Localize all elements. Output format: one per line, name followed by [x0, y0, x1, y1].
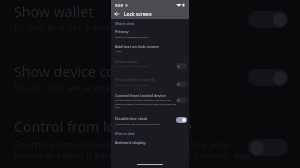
- staticText: Show wallet: [115, 59, 138, 65]
- staticText: Lock screen: [124, 11, 152, 18]
- staticText: To use, first set a screen lock: [115, 83, 149, 86]
- staticText: Ambient display: [115, 140, 146, 146]
- staticText: Show all notification content: [115, 35, 149, 38]
- staticText: None: [115, 49, 122, 52]
- staticText: app: [115, 105, 120, 108]
- staticText: Add text on lock screen: [115, 44, 160, 50]
- staticText: Control external devices without unlocki…: [13, 138, 231, 151]
- staticText: To use, first set a screen lock: [13, 21, 143, 34]
- button[interactable]: Back: [112, 10, 120, 18]
- staticText: Control from locked device: [115, 93, 166, 99]
- staticText: To use, first set a screen lock: [115, 64, 149, 67]
- staticText: Control external devices without unlocki…: [115, 98, 172, 101]
- staticText: Show wallet: [14, 2, 94, 21]
- staticText: phone or tablet if allowed by the device…: [115, 102, 177, 105]
- staticText: Show device controls: [115, 77, 155, 83]
- staticText: Show double-line clock when available: [115, 122, 160, 125]
- staticText: Show device controls: [14, 62, 154, 81]
- staticText: When to show: [115, 132, 135, 136]
- staticText: To use, first set a screen lock: [13, 81, 143, 94]
- staticText: Control from locked device: [14, 117, 193, 136]
- button[interactable]: Show wallet: [176, 63, 187, 69]
- staticText: Double-line clock: [115, 116, 148, 122]
- button[interactable]: Double-line clock: [176, 117, 187, 123]
- staticText: 9:59: [115, 3, 123, 8]
- staticText: What to show: [115, 22, 134, 26]
- staticText: Privacy: [115, 29, 129, 35]
- staticText: phone or tablet if allowed by the device…: [13, 149, 251, 162]
- button[interactable]: Control from locked device: [176, 97, 187, 103]
- button[interactable]: Show device controls: [176, 81, 187, 87]
